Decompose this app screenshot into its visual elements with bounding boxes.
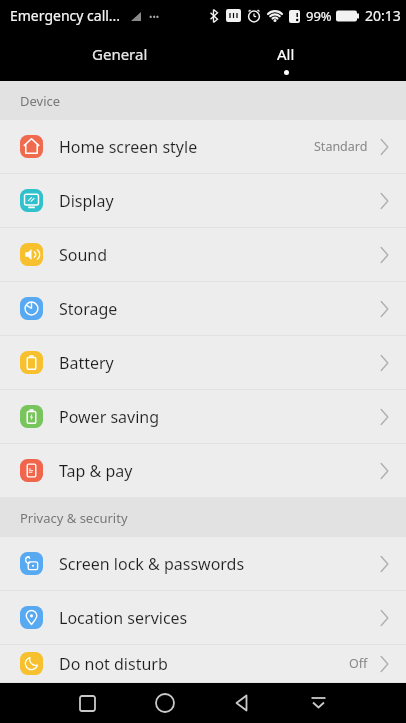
staticText: All bbox=[277, 44, 295, 64]
button[interactable]: Sound bbox=[0, 228, 406, 282]
staticText: Storage bbox=[59, 298, 118, 320]
staticText: Home screen style bbox=[59, 136, 198, 158]
button[interactable]: All bbox=[203, 31, 369, 81]
button[interactable] bbox=[280, 683, 357, 723]
button[interactable] bbox=[203, 683, 280, 723]
staticText: Privacy & security bbox=[20, 509, 128, 527]
staticText: Device bbox=[20, 92, 61, 110]
button[interactable]: Tap & pay bbox=[0, 444, 406, 498]
staticText: Screen lock & passwords bbox=[59, 553, 245, 575]
staticText: Do not disturb bbox=[59, 653, 168, 675]
staticText: 20:13 bbox=[365, 6, 401, 25]
staticText: Off bbox=[349, 655, 368, 672]
button[interactable]: Battery bbox=[0, 336, 406, 390]
button[interactable]: Home screen style bbox=[0, 120, 406, 174]
staticText: ••• bbox=[149, 10, 160, 22]
button[interactable]: Do not disturb bbox=[0, 645, 406, 683]
staticText: 99% bbox=[306, 7, 332, 25]
staticText: Emergency call... bbox=[10, 6, 121, 25]
button[interactable]: Power saving bbox=[0, 390, 406, 444]
staticText: Power saving bbox=[59, 406, 160, 428]
button[interactable]: Display bbox=[0, 174, 406, 228]
staticText: Sound bbox=[59, 244, 108, 266]
staticText: Display bbox=[59, 190, 114, 212]
staticText: General bbox=[92, 44, 148, 64]
button[interactable]: Storage bbox=[0, 282, 406, 336]
button[interactable]: Screen lock & passwords bbox=[0, 537, 406, 591]
staticText: Battery bbox=[59, 352, 114, 374]
staticText: Tap & pay bbox=[59, 460, 133, 482]
button[interactable]: General bbox=[37, 31, 203, 81]
staticText: Location services bbox=[59, 607, 188, 629]
button[interactable]: Location services bbox=[0, 591, 406, 645]
button[interactable] bbox=[126, 683, 203, 723]
staticText: Standard bbox=[314, 138, 368, 155]
button[interactable] bbox=[49, 683, 126, 723]
